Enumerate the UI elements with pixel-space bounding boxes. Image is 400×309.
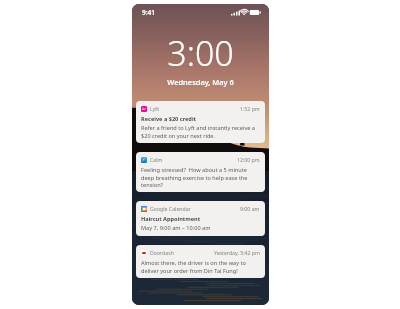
button[interactable]: Lyft <box>136 101 265 143</box>
staticText: Haircut Appointment <box>141 215 201 223</box>
staticText: Receive a $20 credit <box>141 115 197 123</box>
staticText: Calm <box>150 156 163 163</box>
button[interactable]: Doordash <box>136 245 265 278</box>
staticText: 1:52 pm <box>240 105 260 112</box>
staticText: 9:41 <box>142 8 155 17</box>
staticText: Wednesday, May 6 <box>167 77 234 87</box>
staticText: Yesterday, 5:42 pm <box>214 249 260 256</box>
button[interactable]: Calm <box>136 152 265 192</box>
button[interactable]: Google Calendar <box>136 201 265 236</box>
staticText: Feeling stressed? How about a 5 minute d… <box>141 166 260 188</box>
staticText: Doordash <box>150 249 174 256</box>
staticText: 9:00 am <box>240 205 260 212</box>
staticText: Almost there, the driver is on the way t… <box>141 259 260 274</box>
staticText: 3:00 <box>167 30 234 76</box>
staticText: Lyft <box>150 105 160 112</box>
staticText: Refer a friend to Lyft and instantly rec… <box>141 124 260 139</box>
staticText: 12:00 pm <box>237 156 260 163</box>
staticText: May 7, 9:00 am – 10:00 am <box>141 224 211 232</box>
staticText: Google Calendar <box>150 205 191 212</box>
